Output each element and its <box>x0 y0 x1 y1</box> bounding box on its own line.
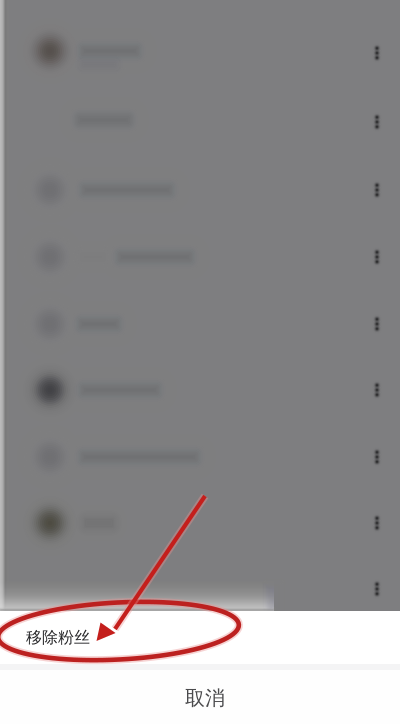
button[interactable]: 移除粉丝 <box>0 611 400 664</box>
staticText: 移除粉丝 <box>26 628 90 647</box>
button[interactable]: 取消 <box>0 670 400 724</box>
staticText: 取消 <box>185 686 225 710</box>
